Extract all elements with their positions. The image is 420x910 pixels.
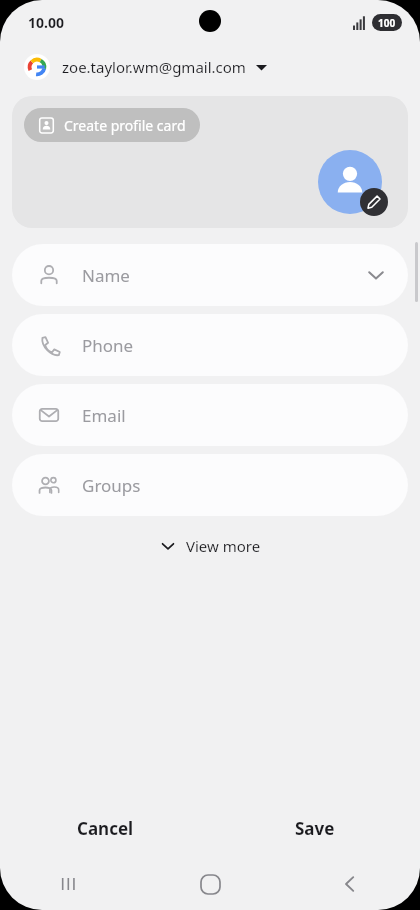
staticText: Create profile card bbox=[64, 116, 186, 135]
staticText: Phone bbox=[82, 334, 134, 357]
button[interactable]: Email bbox=[12, 384, 408, 446]
staticText: Name bbox=[82, 264, 130, 287]
staticText: View more bbox=[186, 536, 261, 556]
button[interactable]: Groups bbox=[12, 454, 408, 516]
button[interactable]: Home bbox=[140, 858, 280, 910]
staticText: Groups bbox=[82, 474, 141, 497]
button[interactable]: Save bbox=[210, 798, 420, 858]
button[interactable]: zoe.taylor.wm@gmail.com bbox=[0, 44, 420, 90]
staticText: Cancel bbox=[77, 817, 134, 840]
button[interactable]: Cancel bbox=[0, 798, 210, 858]
button[interactable]: Create profile card bbox=[24, 108, 200, 142]
staticText: 10.00 bbox=[28, 13, 64, 32]
button[interactable]: Edit profile photo bbox=[318, 150, 382, 214]
button[interactable]: Phone bbox=[12, 314, 408, 376]
staticText: 100 bbox=[378, 16, 396, 30]
staticText: zoe.taylor.wm@gmail.com bbox=[62, 57, 246, 77]
staticText: Save bbox=[295, 817, 335, 840]
button[interactable]: View more bbox=[146, 528, 275, 564]
staticText: Email bbox=[82, 404, 126, 427]
button[interactable]: Back bbox=[280, 858, 420, 910]
button[interactable]: Name bbox=[12, 244, 408, 306]
button[interactable]: Recent apps bbox=[0, 858, 140, 910]
